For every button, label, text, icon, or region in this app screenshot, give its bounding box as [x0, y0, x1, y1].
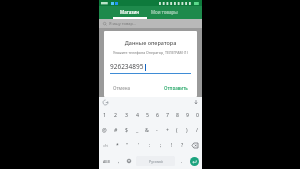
staticText: " [126, 142, 129, 149]
button[interactable]: 2 [110, 107, 121, 122]
staticText: ? [181, 142, 184, 149]
button[interactable]: ? [177, 137, 188, 153]
staticText: ) [186, 126, 188, 133]
button[interactable]: АБВ [99, 153, 114, 169]
staticText: , [118, 158, 120, 165]
staticText: . [181, 158, 183, 165]
staticText: Данные оператора [110, 39, 191, 46]
staticText: Я ищу товар... [109, 21, 137, 26]
button[interactable]: ' [133, 137, 144, 153]
button[interactable]: 3 [121, 107, 132, 122]
button[interactable]: Русский [136, 156, 175, 166]
staticText: 8 [176, 111, 179, 118]
staticText: - [156, 126, 158, 133]
staticText: 926234895 [110, 62, 144, 71]
staticText: 1 [103, 111, 106, 118]
button[interactable]: 4 [132, 107, 142, 122]
staticText: 4 [136, 111, 139, 118]
button[interactable]: Отправить [161, 83, 191, 92]
button[interactable]: ! [166, 137, 177, 153]
button[interactable]: _ [132, 122, 142, 137]
staticText: & [145, 126, 149, 133]
button[interactable]: ( [172, 122, 182, 137]
staticText: 2 [114, 111, 117, 118]
staticText: 6 [156, 111, 159, 118]
button[interactable]: Google [102, 99, 108, 105]
button[interactable]: 6 [152, 107, 162, 122]
staticText: 3 [125, 111, 128, 118]
staticText: Магазин [120, 9, 140, 15]
button[interactable]: + [162, 122, 172, 137]
staticText: 7 [166, 111, 169, 118]
button[interactable]: 1 [99, 107, 110, 122]
button[interactable]: # [110, 122, 121, 137]
staticText: =\< [103, 143, 109, 148]
staticText: 5 [146, 111, 149, 118]
staticText: ( [176, 126, 178, 133]
staticText: 9 [186, 111, 189, 118]
button[interactable]: : [144, 137, 155, 153]
staticText: Укажите телефона Оператор, ТЕЛЕГРАМ (1) [110, 50, 191, 55]
button[interactable]: Мои товары [147, 6, 181, 17]
staticText: * [116, 142, 119, 149]
staticText: ; [160, 142, 162, 149]
staticText: 0 [196, 111, 199, 118]
button[interactable]: 5 [142, 107, 152, 122]
button[interactable]: " [122, 137, 133, 153]
button[interactable]: Backspace [188, 137, 202, 153]
staticText: ! [171, 142, 173, 149]
staticText: @ [102, 126, 107, 133]
staticText: : [149, 142, 151, 149]
staticText: _ [136, 126, 139, 133]
button[interactable]: Enter [190, 157, 199, 166]
button[interactable]: . [177, 153, 187, 169]
button[interactable]: , [114, 153, 124, 169]
button[interactable]: 8 [172, 107, 182, 122]
button[interactable]: More [193, 99, 199, 105]
button[interactable]: 0 [192, 107, 202, 122]
staticText: Мои товары [151, 9, 178, 15]
other: Search [103, 22, 107, 26]
button[interactable]: Отмена [110, 83, 134, 92]
button[interactable]: $ [121, 122, 132, 137]
button[interactable]: * [112, 137, 122, 153]
button[interactable]: - [152, 122, 162, 137]
button[interactable]: Магазин [113, 6, 147, 17]
button[interactable]: & [142, 122, 152, 137]
button[interactable]: ) [182, 122, 192, 137]
staticText: Отправить [164, 85, 188, 90]
staticText: + [166, 126, 169, 133]
staticText: ' [138, 142, 140, 149]
staticText: $ [125, 126, 128, 133]
staticText: # [114, 126, 118, 133]
button[interactable]: 926234895 [110, 62, 191, 74]
button[interactable]: ; [155, 137, 166, 153]
staticText: Русский [149, 159, 163, 164]
staticText: АБВ [103, 159, 110, 164]
button[interactable]: Emoji [124, 153, 134, 169]
button[interactable]: 9 [182, 107, 192, 122]
button[interactable]: Search [103, 21, 198, 26]
button[interactable]: =\< [99, 137, 112, 153]
button[interactable]: 7 [162, 107, 172, 122]
button[interactable]: / [192, 122, 202, 137]
button[interactable]: @ [99, 122, 110, 137]
staticText: / [196, 126, 198, 133]
staticText: Отмена [113, 85, 131, 90]
